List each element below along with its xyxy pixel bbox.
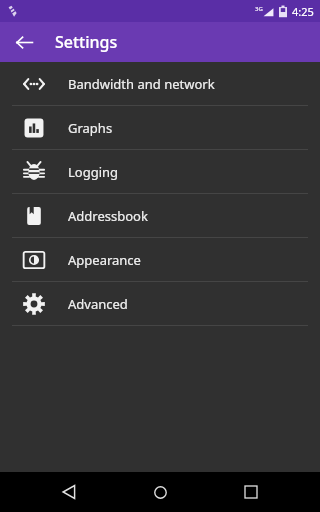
button[interactable]: Home — [138, 472, 182, 512]
staticText: Appearance — [68, 251, 141, 269]
button[interactable]: Addressbook — [0, 194, 320, 237]
staticText: 4:25 — [292, 4, 314, 19]
staticText: Graphs — [68, 119, 113, 137]
staticText: 3G — [255, 5, 263, 13]
staticText: Addressbook — [68, 207, 148, 225]
staticText: Bandwidth and network — [68, 75, 215, 93]
button[interactable]: Navigate up — [8, 26, 40, 58]
button[interactable]: Bandwidth and network — [0, 62, 320, 105]
button[interactable]: Advanced — [0, 282, 320, 325]
button[interactable]: Graphs — [0, 106, 320, 149]
button[interactable]: Appearance — [0, 238, 320, 281]
button[interactable]: Logging — [0, 150, 320, 193]
staticText: Logging — [68, 163, 119, 181]
staticText: Settings — [55, 31, 118, 53]
staticText: Advanced — [68, 295, 128, 313]
button[interactable]: Back — [47, 472, 91, 512]
button[interactable]: Recent apps — [229, 472, 273, 512]
